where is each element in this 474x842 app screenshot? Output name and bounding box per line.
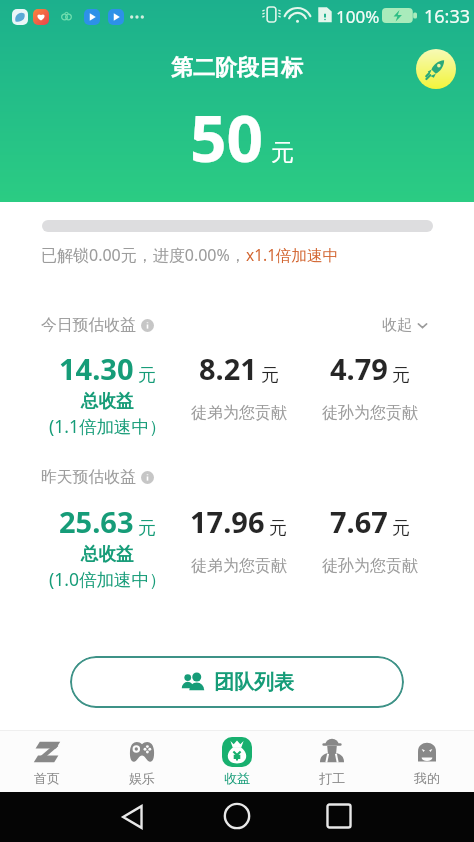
staticText: 团队列表: [214, 670, 294, 695]
staticText: 14.30: [59, 349, 134, 388]
staticText: x1.1倍加速中: [246, 244, 339, 265]
button[interactable]: 返回: [115, 800, 149, 834]
staticText: 徒孙为您贡献: [322, 556, 418, 576]
button[interactable]: 团队列表: [70, 656, 404, 708]
staticText: 7.67: [330, 502, 388, 541]
staticText: 收起: [382, 316, 412, 335]
staticText: (1.0倍加速中）: [49, 567, 167, 591]
staticText: 元: [271, 138, 294, 167]
staticText: 元: [138, 517, 156, 540]
staticText: 今日预估收益: [41, 315, 136, 335]
staticText: 元: [269, 517, 287, 540]
button[interactable]: 主屏幕: [221, 800, 253, 832]
staticText: 昨天预估收益: [41, 467, 136, 487]
staticText: (1.1倍加速中）: [49, 414, 167, 438]
staticText: 打工: [319, 770, 345, 786]
staticText: 17.96: [190, 502, 265, 541]
staticText: 50: [190, 94, 264, 181]
staticText: 16:33: [424, 4, 471, 29]
button[interactable]: 收益: [189, 730, 284, 792]
staticText: 元: [138, 364, 156, 387]
button[interactable]: 收起: [382, 316, 429, 335]
staticText: 我的: [414, 770, 440, 786]
staticText: 已解锁0.00元，进度0.00%，: [41, 244, 246, 266]
staticText: 娱乐: [129, 770, 155, 786]
staticText: 元: [392, 517, 410, 540]
staticText: 徒弟为您贡献: [191, 403, 287, 423]
button[interactable]: 娱乐: [94, 730, 189, 792]
button[interactable]: 最近任务: [323, 800, 355, 832]
staticText: 4.79: [330, 349, 388, 388]
staticText: 25.63: [59, 502, 134, 541]
staticText: 徒孙为您贡献: [322, 403, 418, 423]
button[interactable]: 首页: [0, 730, 94, 792]
staticText: 首页: [34, 770, 60, 786]
staticText: 收益: [224, 770, 250, 786]
staticText: 第二阶段目标: [171, 54, 303, 82]
staticText: 元: [261, 364, 279, 387]
staticText: 100%: [336, 5, 380, 28]
button[interactable]: 我的: [379, 730, 474, 792]
button[interactable]: 打工: [284, 730, 379, 792]
staticText: 徒弟为您贡献: [191, 556, 287, 576]
staticText: 总收益: [81, 390, 134, 412]
staticText: 元: [392, 364, 410, 387]
staticText: 8.21: [199, 349, 257, 388]
staticText: 总收益: [81, 543, 134, 565]
button[interactable]: 加速火箭: [416, 49, 456, 89]
